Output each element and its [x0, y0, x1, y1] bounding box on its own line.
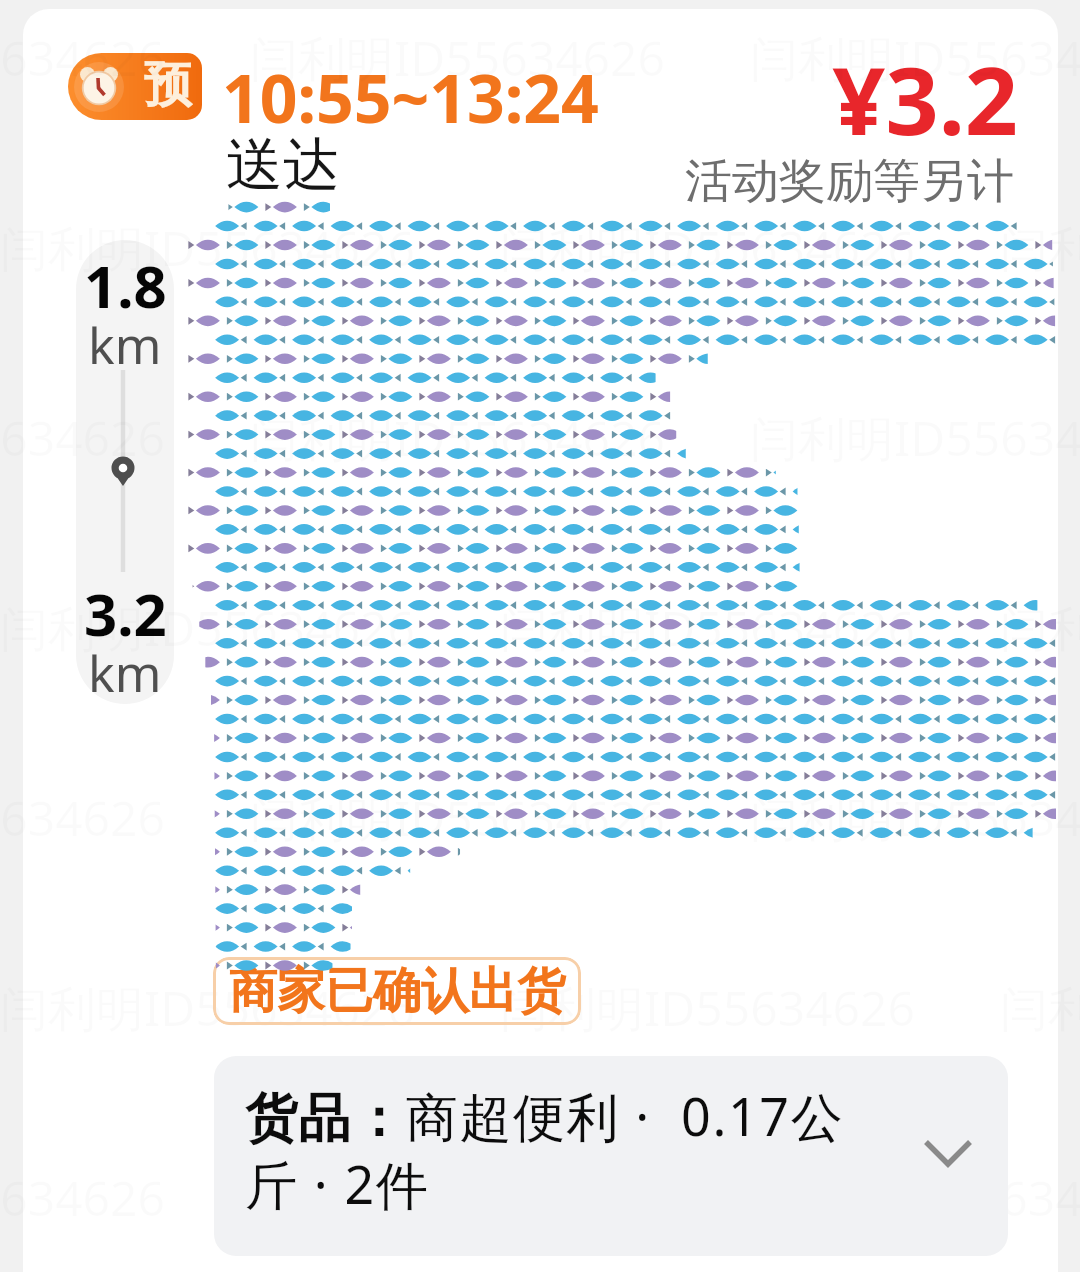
staticText: 3.2 [84, 574, 167, 653]
staticText: 闫利明ID55634626 [0, 975, 415, 1041]
staticText: 闫利明ID55634626 [0, 595, 415, 661]
staticText: 预 [144, 55, 192, 115]
staticText: 闫利明ID55634626 [250, 785, 665, 851]
staticText: 闫利明ID55634626 [500, 215, 915, 281]
staticText: 闫利明ID55634626 [750, 25, 1080, 91]
other: Expand goods detail [920, 1134, 976, 1174]
staticText: 送达 [226, 129, 340, 201]
staticText: 闫利明ID55634626 [0, 785, 165, 851]
staticText: ¥3.2 [690, 36, 1018, 163]
staticText: 货品：商超便利 · 0.17公 斤 · 2件 [245, 1080, 905, 1219]
button[interactable]: 商家已确认出货 [213, 957, 581, 1025]
staticText: km [88, 639, 162, 707]
staticText: 闫利明ID55634626 [750, 405, 1080, 471]
staticText: 闫利明ID55634626 [250, 1165, 665, 1231]
staticText: 闫利明ID55634626 [750, 785, 1080, 851]
staticText: 闫利明ID55634626 [750, 1165, 1080, 1231]
staticText: km [88, 311, 162, 379]
staticText: 1.8 [84, 246, 167, 325]
button[interactable]: 预 [68, 53, 202, 120]
staticText: 闫利明ID55634626 [0, 25, 165, 91]
staticText: 闫利明ID55634626 [250, 25, 665, 91]
staticText: 闫利明ID55634626 [500, 595, 915, 661]
staticText: 闫利明ID55634626 [1000, 215, 1080, 281]
staticText: 闫利明ID55634626 [500, 975, 915, 1041]
staticText: 10:55~13:24 [222, 52, 599, 142]
staticText: 闫利明ID55634626 [0, 405, 165, 471]
staticText: 闫利明ID55634626 [0, 215, 415, 281]
staticText: 商家已确认出货 [229, 961, 565, 1021]
staticText: 闫利明ID55634626 [250, 405, 665, 471]
button[interactable]: 货品：商超便利 · 0.17公 斤 · 2件 [214, 1056, 1008, 1256]
staticText: 闫利明ID55634626 [1000, 595, 1080, 661]
staticText: 闫利明ID55634626 [1000, 975, 1080, 1041]
staticText: 闫利明ID55634626 [0, 1165, 165, 1231]
staticText: 活动奖励等另计 [590, 152, 1014, 211]
